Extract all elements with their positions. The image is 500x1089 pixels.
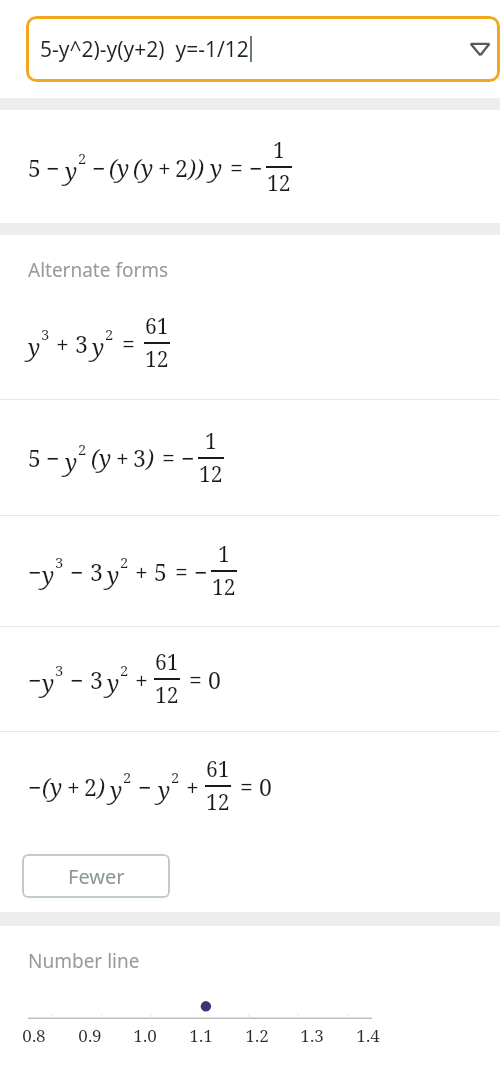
- staticText: =: [175, 556, 188, 587]
- other: Clear: [466, 36, 492, 62]
- button[interactable]: Number line plot: [0, 978, 500, 1074]
- staticText: 1.4: [356, 1024, 380, 1047]
- staticText: −: [138, 771, 152, 802]
- staticText: y: [28, 331, 41, 362]
- staticText: 1.0: [133, 1024, 157, 1047]
- staticText: 12: [206, 788, 230, 817]
- staticText: 2: [78, 148, 87, 168]
- staticText: y: [158, 774, 171, 805]
- staticText: (: [91, 442, 99, 473]
- staticText: ): [97, 771, 105, 802]
- staticText: y: [110, 774, 123, 805]
- staticText: =: [189, 664, 202, 695]
- staticText: 2: [175, 152, 188, 183]
- staticText: +: [158, 152, 171, 183]
- staticText: −: [70, 664, 84, 695]
- staticText: y: [42, 559, 55, 590]
- staticText: (: [42, 771, 50, 802]
- button[interactable]: 5-y^2)-y(y+2) y=-1/12: [26, 16, 500, 82]
- staticText: 2: [120, 552, 129, 572]
- staticText: 12: [155, 681, 179, 710]
- staticText: 2: [171, 767, 180, 787]
- staticText: 1: [273, 136, 285, 165]
- button[interactable]: y: [0, 287, 500, 399]
- button[interactable]: −: [0, 627, 500, 731]
- staticText: 12: [267, 169, 291, 198]
- staticText: y: [65, 446, 78, 477]
- staticText: Number line: [28, 948, 140, 974]
- staticText: −: [70, 556, 84, 587]
- staticText: 5-y^2)-y(y+2) y=-1/12: [40, 35, 249, 64]
- staticText: 0: [259, 771, 272, 802]
- staticText: −: [46, 442, 60, 473]
- staticText: −: [46, 152, 60, 183]
- staticText: 3: [133, 442, 146, 473]
- staticText: 61: [155, 648, 179, 677]
- button[interactable]: 5: [0, 400, 500, 515]
- staticText: )): [188, 152, 204, 183]
- staticText: 3: [55, 660, 64, 680]
- staticText: (: [133, 152, 141, 183]
- staticText: 61: [145, 312, 169, 341]
- staticText: 1.1: [189, 1024, 213, 1047]
- staticText: 1.3: [300, 1024, 324, 1047]
- staticText: =: [240, 771, 253, 802]
- staticText: y: [141, 152, 154, 183]
- staticText: −: [249, 152, 263, 183]
- staticText: ): [146, 442, 154, 473]
- staticText: 5: [28, 152, 41, 183]
- staticText: −: [28, 556, 42, 587]
- staticText: (: [109, 152, 117, 183]
- staticText: y: [107, 667, 120, 698]
- staticText: −: [92, 152, 106, 183]
- staticText: 61: [206, 755, 230, 784]
- staticText: y: [92, 331, 105, 362]
- staticText: +: [135, 556, 148, 587]
- staticText: y: [117, 152, 130, 183]
- staticText: +: [67, 771, 80, 802]
- staticText: 1: [205, 427, 217, 456]
- staticText: 2: [84, 771, 97, 802]
- staticText: 3: [41, 324, 50, 344]
- staticText: =: [162, 442, 175, 473]
- button[interactable]: 5: [0, 110, 500, 223]
- staticText: −: [194, 556, 208, 587]
- staticText: −: [181, 442, 195, 473]
- staticText: 1: [218, 540, 230, 569]
- staticText: y: [65, 155, 78, 186]
- staticText: +: [116, 442, 129, 473]
- staticText: 2: [120, 660, 129, 680]
- staticText: y: [99, 442, 112, 473]
- staticText: 2: [105, 324, 114, 344]
- staticText: 1.2: [245, 1024, 269, 1047]
- staticText: y: [210, 152, 223, 183]
- staticText: 5: [28, 442, 41, 473]
- staticText: 5: [154, 556, 167, 587]
- staticText: =: [122, 328, 135, 359]
- staticText: +: [135, 664, 148, 695]
- staticText: +: [186, 771, 199, 802]
- staticText: 3: [55, 552, 64, 572]
- staticText: 3: [75, 328, 88, 359]
- staticText: Alternate forms: [28, 257, 169, 283]
- staticText: −: [28, 664, 42, 695]
- staticText: y: [50, 771, 63, 802]
- button[interactable]: −: [0, 516, 500, 626]
- staticText: 3: [90, 556, 103, 587]
- staticText: 12: [199, 460, 223, 489]
- staticText: 12: [145, 345, 169, 374]
- button[interactable]: −: [0, 732, 500, 840]
- staticText: 2: [123, 767, 132, 787]
- staticText: 0.8: [22, 1024, 46, 1047]
- staticText: =: [230, 152, 243, 183]
- button[interactable]: Fewer: [22, 854, 170, 898]
- staticText: −: [28, 771, 42, 802]
- staticText: y: [107, 559, 120, 590]
- staticText: 12: [212, 573, 236, 602]
- staticText: Fewer: [68, 863, 125, 890]
- staticText: 0: [208, 664, 221, 695]
- staticText: 3: [90, 664, 103, 695]
- staticText: +: [56, 328, 69, 359]
- staticText: y: [42, 667, 55, 698]
- other: Number line plot: [0, 978, 500, 1074]
